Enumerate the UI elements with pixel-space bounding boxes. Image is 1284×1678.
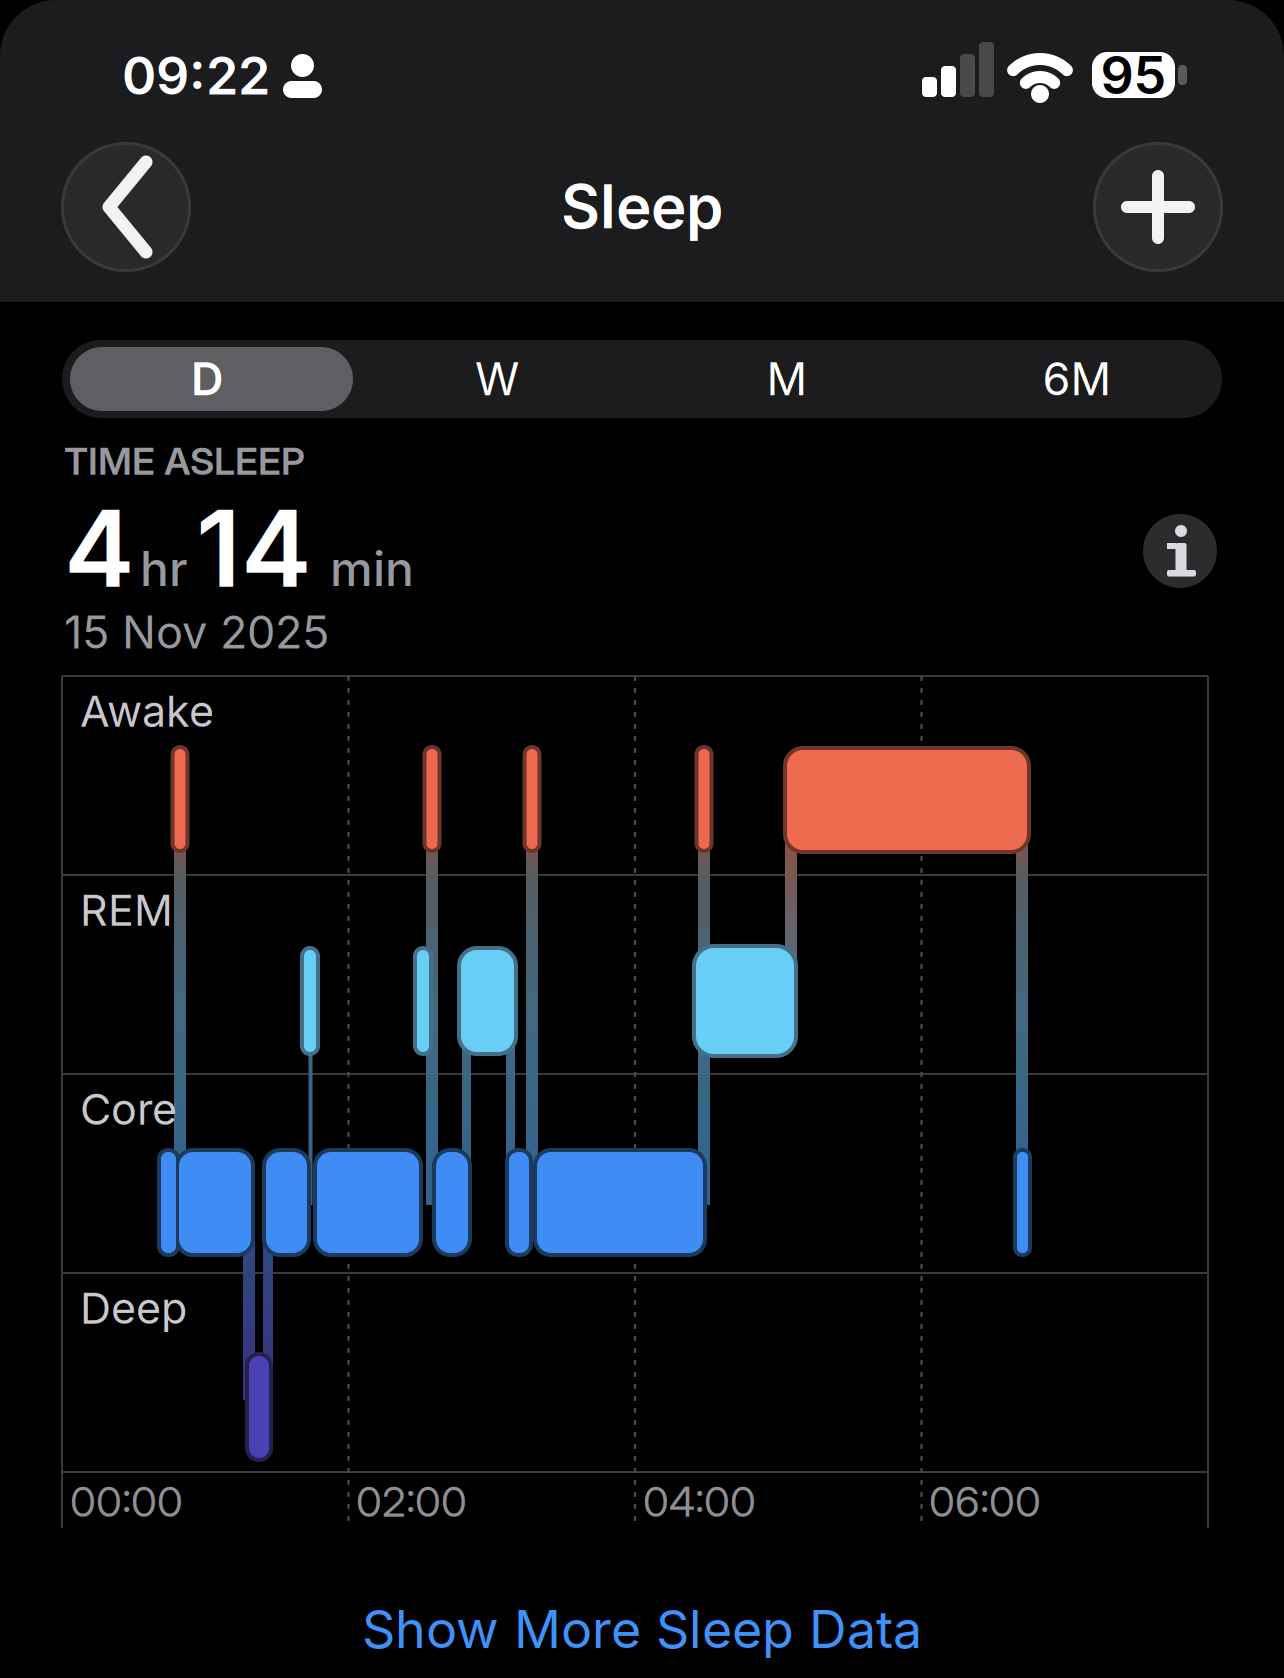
staticText: Sleep xyxy=(561,170,723,243)
button[interactable]: M xyxy=(642,340,932,418)
button[interactable]: W xyxy=(352,340,642,418)
staticText: 6M xyxy=(1042,352,1111,406)
staticText: Core xyxy=(80,1083,177,1135)
staticText: 06:00 xyxy=(929,1476,1041,1527)
button[interactable]: Back xyxy=(61,142,191,272)
staticText: 14 xyxy=(196,484,312,612)
staticText: 09:22 xyxy=(122,44,270,107)
button[interactable]: D xyxy=(62,340,352,418)
staticText: Deep xyxy=(80,1282,187,1334)
staticText: 15 Nov 2025 xyxy=(64,605,329,659)
staticText: hr xyxy=(140,539,188,598)
staticText: D xyxy=(191,352,223,406)
staticText: 04:00 xyxy=(643,1476,756,1527)
staticText: Awake xyxy=(80,685,214,737)
staticText: 02:00 xyxy=(356,1476,467,1527)
staticText: TIME ASLEEP xyxy=(64,438,305,484)
staticText: REM xyxy=(80,884,173,936)
staticText: W xyxy=(475,352,519,406)
button[interactable]: About Sleep xyxy=(1143,514,1217,588)
staticText: 95 xyxy=(1100,43,1166,106)
button[interactable]: Show More Sleep Data xyxy=(0,1589,1284,1669)
staticText: 00:00 xyxy=(70,1476,183,1527)
button[interactable]: 6M xyxy=(932,340,1222,418)
staticText: Show More Sleep Data xyxy=(362,1597,922,1660)
button[interactable]: Add Data xyxy=(1093,142,1223,272)
staticText: M xyxy=(766,352,807,406)
staticText: min xyxy=(330,539,414,598)
staticText: 4 xyxy=(64,484,135,612)
